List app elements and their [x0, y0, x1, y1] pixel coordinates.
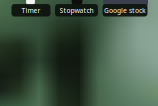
staticText: Stopwatch [59, 6, 93, 15]
button[interactable]: Google stock [102, 4, 147, 17]
button[interactable]: Timer [11, 4, 50, 17]
button[interactable]: Stopwatch [55, 4, 98, 17]
staticText: Google stock [104, 6, 146, 15]
staticText: Timer [21, 6, 40, 15]
